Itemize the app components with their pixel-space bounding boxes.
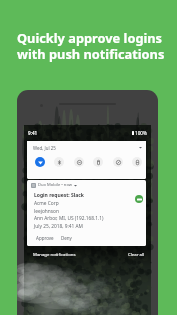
button[interactable]: Do not disturb <box>74 157 84 167</box>
staticText: leejohnson <box>34 208 59 215</box>
staticText: July 25, 2018, 9:41 AM <box>34 223 83 230</box>
staticText: Login request: Slack <box>34 192 84 199</box>
button[interactable]: Clear all <box>128 251 145 257</box>
staticText: 9:41 <box>28 130 38 136</box>
button[interactable]: Bluetooth <box>54 157 64 167</box>
staticText: Deny <box>61 235 72 241</box>
staticText: Clear all <box>128 251 145 257</box>
staticText: Quickly approve logins <box>17 29 163 46</box>
button[interactable]: Flashlight <box>93 157 103 167</box>
staticText: Acme Corp <box>34 200 59 207</box>
staticText: with push notifications <box>17 45 165 62</box>
button[interactable]: Approve <box>36 235 54 241</box>
staticText: Approve <box>36 235 54 241</box>
staticText: Duo Mobile • now <box>38 182 72 188</box>
staticText: Ann Arbor, MI, US (192.168.1.1) <box>34 215 104 222</box>
button[interactable]: Deny <box>61 235 72 241</box>
button[interactable]: Battery saver <box>132 157 142 167</box>
button[interactable]: Wi-Fi <box>35 157 45 167</box>
staticText: 100% <box>135 130 147 136</box>
staticText: Manage notifications <box>33 251 76 257</box>
button[interactable]: Manage notifications <box>33 251 76 257</box>
button[interactable]: Auto-rotate <box>113 157 123 167</box>
staticText: Wed, Jul 25 <box>33 145 56 151</box>
